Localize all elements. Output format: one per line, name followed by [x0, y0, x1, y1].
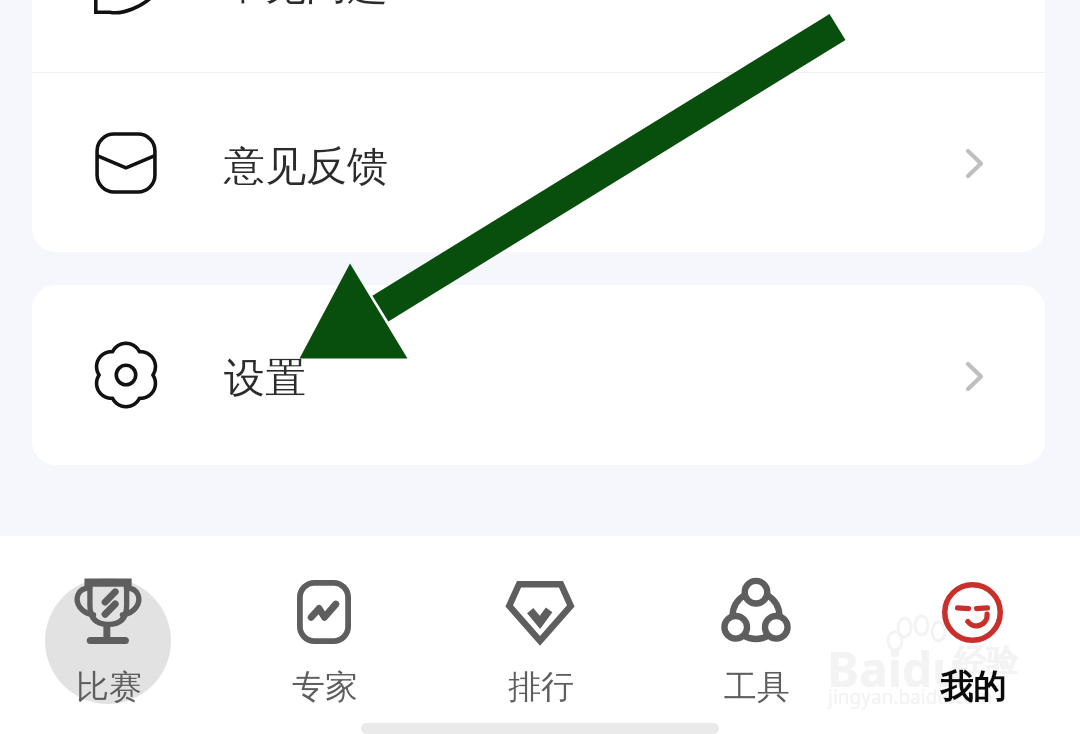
staticText: 专家 [292, 666, 358, 708]
staticText: Baidu [827, 636, 964, 701]
button[interactable]: 排行 [432, 536, 648, 696]
button[interactable]: 我的 [864, 536, 1080, 696]
button[interactable]: 比赛 [0, 536, 216, 696]
staticText: 工具 [724, 666, 790, 708]
staticText: 经验 [954, 641, 1018, 681]
staticText: jingyan.baidu.com [828, 684, 993, 710]
staticText: 设置 [224, 353, 306, 405]
staticText: 常见问题 [224, 0, 388, 12]
button[interactable]: 设置 [32, 285, 1045, 465]
staticText: 我的 [940, 666, 1006, 708]
button[interactable]: 专家 [216, 536, 432, 696]
button[interactable]: 意见反馈 [32, 73, 1045, 252]
staticText: 比赛 [76, 666, 142, 708]
staticText: 意见反馈 [224, 141, 388, 193]
staticText: 排行 [508, 666, 574, 708]
button[interactable]: 常见问题 [32, 0, 1045, 72]
button[interactable]: 工具 [648, 536, 864, 696]
